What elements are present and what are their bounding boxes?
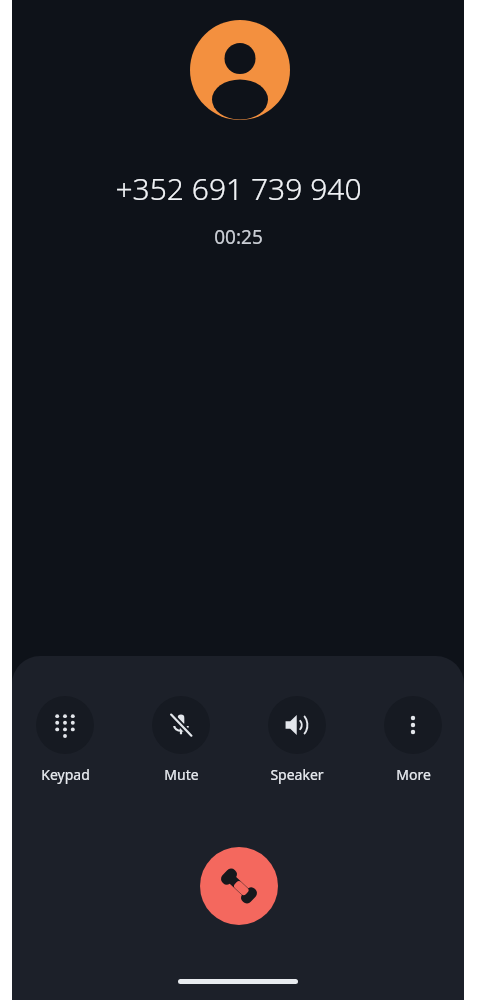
other: Keypad [36, 696, 94, 754]
button[interactable]: Speaker [257, 690, 337, 790]
staticText: +352 691 739 940 [115, 168, 362, 208]
staticText: Mute [164, 765, 199, 784]
button[interactable]: More options [373, 690, 453, 790]
button[interactable]: Mute [141, 690, 221, 790]
staticText: Keypad [41, 765, 90, 784]
staticText: Speaker [270, 765, 324, 784]
staticText: More [396, 765, 431, 784]
staticText: 00:25 [214, 224, 263, 250]
other: Speaker [268, 696, 326, 754]
other: Mute [152, 696, 210, 754]
button[interactable]: End call [200, 847, 278, 925]
button[interactable]: Keypad [25, 690, 105, 790]
other: More options [384, 696, 442, 754]
